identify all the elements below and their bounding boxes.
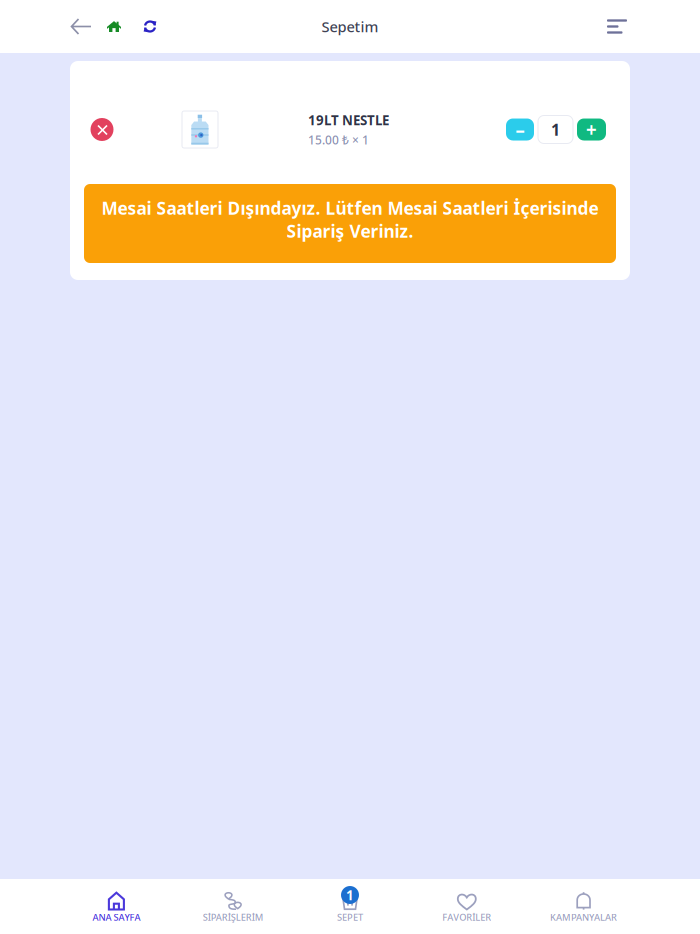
staticText: 1 [551,119,560,140]
button[interactable]: FAVORİLER [408,879,525,934]
staticText: Sepetim [321,17,378,36]
button[interactable]: Increase quantity [577,118,606,140]
button[interactable]: Decrease quantity [506,118,534,140]
staticText: 15.00 ₺ × 1 [308,132,369,148]
button[interactable]: Home [107,11,121,41]
staticText: – [515,117,524,142]
staticText: ANA SAYFA [92,911,140,923]
staticText: + [586,117,597,142]
button[interactable]: Refresh [143,11,157,41]
button[interactable]: SİPARİŞLERİM [175,879,292,934]
button[interactable]: ANA SAYFA [58,879,175,934]
staticText: Sipariş Veriniz. [286,219,413,242]
button[interactable]: Menu [607,11,627,41]
button[interactable]: Remove item [80,107,124,151]
staticText: SİPARİŞLERİM [203,911,264,923]
staticText: FAVORİLER [442,911,491,923]
staticText: 19LT NESTLE [308,111,389,129]
button[interactable]: 1 [292,879,408,934]
staticText: Mesai Saatleri Dışındayız. Lütfen Mesai … [101,196,598,219]
staticText: SEPET [337,911,363,923]
staticText: 1 [346,886,354,904]
staticText: KAMPANYALAR [550,911,617,923]
button[interactable]: Back [70,11,92,41]
button[interactable]: KAMPANYALAR [525,879,642,934]
